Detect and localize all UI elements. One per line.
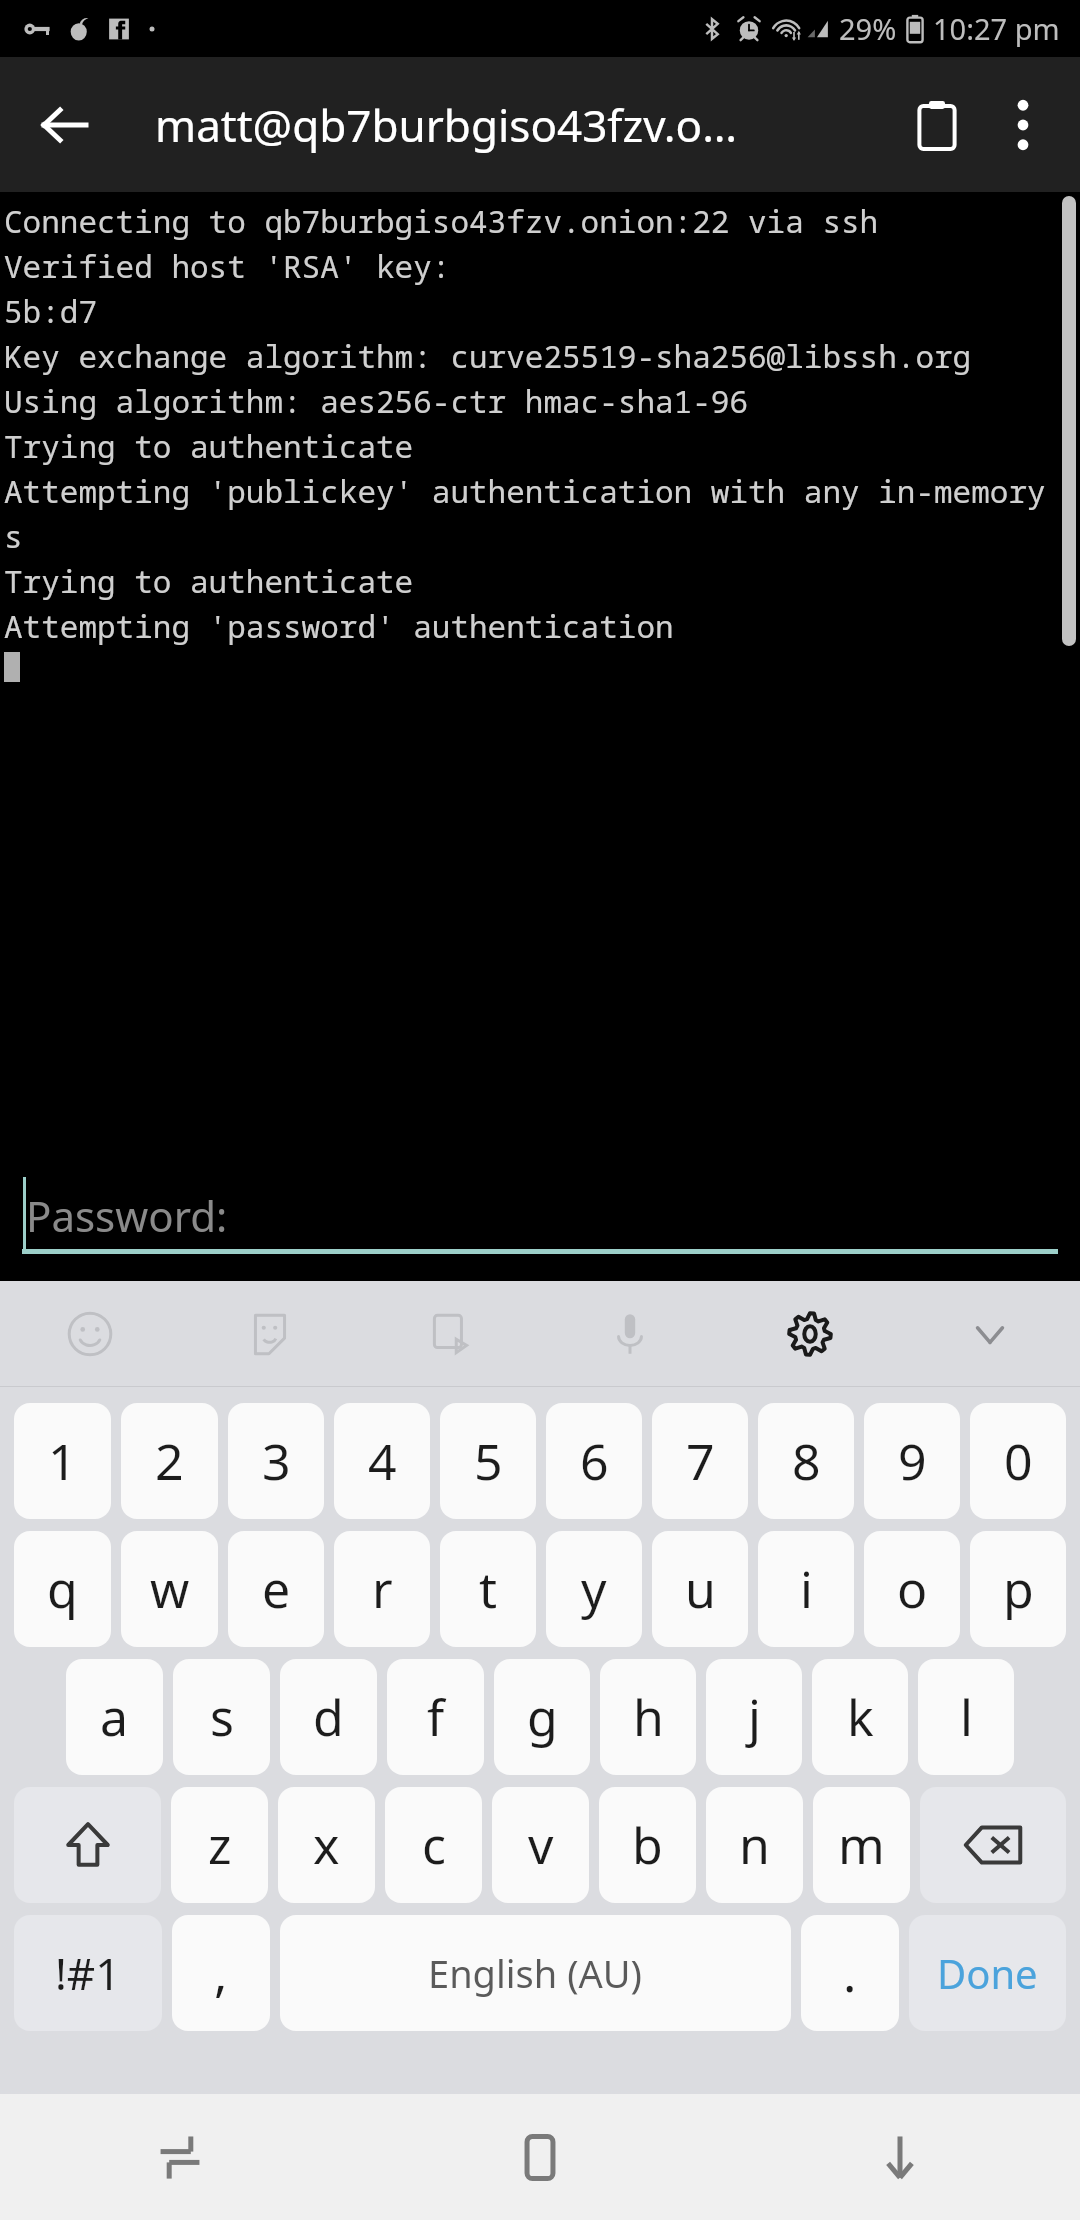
staticText: l <box>960 1683 973 1751</box>
staticText: !#1 <box>55 1943 121 2003</box>
button[interactable]: Back <box>720 2094 1080 2220</box>
staticText: 1 <box>48 1427 77 1495</box>
button[interactable]: o <box>864 1531 960 1647</box>
staticText: h <box>633 1683 664 1751</box>
staticText: Password: <box>26 1187 228 1244</box>
button[interactable]: Voice input <box>540 1281 720 1386</box>
button[interactable]: 8 <box>758 1403 854 1519</box>
button[interactable]: z <box>171 1787 268 1903</box>
staticText: 5b:d7 <box>4 290 97 332</box>
button[interactable]: y <box>546 1531 642 1647</box>
button[interactable]: u <box>652 1531 748 1647</box>
staticText: 7 <box>686 1427 715 1495</box>
button[interactable]: Home <box>360 2094 720 2220</box>
staticText: 29% <box>839 9 897 48</box>
button[interactable]: f <box>387 1659 484 1775</box>
button[interactable]: w <box>121 1531 218 1647</box>
button[interactable]: 7 <box>652 1403 748 1519</box>
staticText: b <box>632 1811 663 1879</box>
staticText: m <box>838 1811 885 1879</box>
staticText: matt@qb7burbgiso43fzv.o… <box>155 95 737 155</box>
staticText: , <box>214 1939 228 2007</box>
button[interactable]: g <box>494 1659 590 1775</box>
button[interactable]: . <box>801 1915 899 2031</box>
staticText: v <box>528 1811 554 1879</box>
staticText: Verified host 'RSA' key: 7d:0c:44:8a:5b:… <box>4 245 1080 287</box>
staticText: 9 <box>898 1427 927 1495</box>
button[interactable]: b <box>599 1787 696 1903</box>
staticText: d <box>313 1683 344 1751</box>
staticText: q <box>47 1555 78 1623</box>
button[interactable]: i <box>758 1531 854 1647</box>
button[interactable]: !#1 <box>14 1915 162 2031</box>
staticText: 0 <box>1004 1427 1033 1495</box>
button[interactable]: k <box>812 1659 908 1775</box>
staticText: f <box>427 1683 445 1751</box>
staticText: 3 <box>262 1427 291 1495</box>
staticText: a <box>100 1683 129 1751</box>
button[interactable]: Stickers <box>180 1281 360 1386</box>
button[interactable]: c <box>385 1787 482 1903</box>
button[interactable]: Password: <box>0 1161 1080 1281</box>
button[interactable]: j <box>706 1659 802 1775</box>
staticText: r <box>372 1555 393 1623</box>
staticText: n <box>739 1811 770 1879</box>
button[interactable]: e <box>228 1531 324 1647</box>
staticText: 10:27 pm <box>933 9 1060 48</box>
button[interactable]: x <box>278 1787 375 1903</box>
button[interactable]: h <box>600 1659 696 1775</box>
staticText: j <box>748 1683 761 1751</box>
staticText: t <box>479 1555 498 1623</box>
button[interactable]: n <box>706 1787 803 1903</box>
staticText: z <box>208 1811 232 1879</box>
button[interactable]: 2 <box>121 1403 218 1519</box>
staticText: i <box>800 1555 813 1623</box>
staticText: g <box>527 1683 558 1751</box>
button[interactable]: d <box>280 1659 377 1775</box>
button[interactable]: , <box>172 1915 270 2031</box>
button[interactable]: Shift <box>14 1787 161 1903</box>
button[interactable]: Back <box>22 82 108 168</box>
button[interactable]: r <box>334 1531 430 1647</box>
staticText: s <box>4 515 23 557</box>
staticText: k <box>847 1683 874 1751</box>
button[interactable]: Done <box>909 1915 1066 2031</box>
button[interactable]: l <box>918 1659 1014 1775</box>
staticText: Trying to authenticate <box>4 425 414 467</box>
button[interactable]: More options <box>980 82 1066 168</box>
button[interactable]: Paste from clipboard <box>894 82 980 168</box>
button[interactable]: m <box>813 1787 910 1903</box>
button[interactable]: q <box>14 1531 111 1647</box>
button[interactable]: 6 <box>546 1403 642 1519</box>
staticText: 5 <box>474 1427 503 1495</box>
button[interactable]: 3 <box>228 1403 324 1519</box>
staticText: Connecting to qb7burbgiso43fzv.onion:22 … <box>4 200 879 242</box>
staticText: y <box>581 1555 607 1623</box>
staticText: c <box>422 1811 446 1879</box>
button[interactable]: Emoji <box>0 1281 180 1386</box>
button[interactable]: s <box>173 1659 270 1775</box>
button[interactable]: v <box>492 1787 589 1903</box>
staticText: 8 <box>792 1427 821 1495</box>
button[interactable]: 1 <box>14 1403 111 1519</box>
button[interactable]: Hide keyboard <box>900 1281 1080 1386</box>
staticText: Attempting 'password' authentication <box>4 605 674 647</box>
staticText: p <box>1003 1555 1034 1623</box>
button[interactable]: 9 <box>864 1403 960 1519</box>
button[interactable]: English (AU) <box>280 1915 791 2031</box>
button[interactable]: 5 <box>440 1403 536 1519</box>
staticText: u <box>685 1555 716 1623</box>
staticText: Using algorithm: aes256-ctr hmac-sha1-96 <box>4 380 748 422</box>
staticText: Attempting 'publickey' authentication wi… <box>4 470 1080 512</box>
button[interactable]: 4 <box>334 1403 430 1519</box>
button[interactable]: Keyboard settings <box>720 1281 900 1386</box>
staticText: e <box>262 1555 291 1623</box>
button[interactable]: Backspace <box>920 1787 1066 1903</box>
button[interactable]: a <box>66 1659 163 1775</box>
staticText: 2 <box>155 1427 184 1495</box>
button[interactable]: Recents <box>0 2094 360 2220</box>
button[interactable]: t <box>440 1531 536 1647</box>
button[interactable]: GIF <box>360 1281 540 1386</box>
button[interactable]: p <box>970 1531 1066 1647</box>
button[interactable]: 0 <box>970 1403 1066 1519</box>
